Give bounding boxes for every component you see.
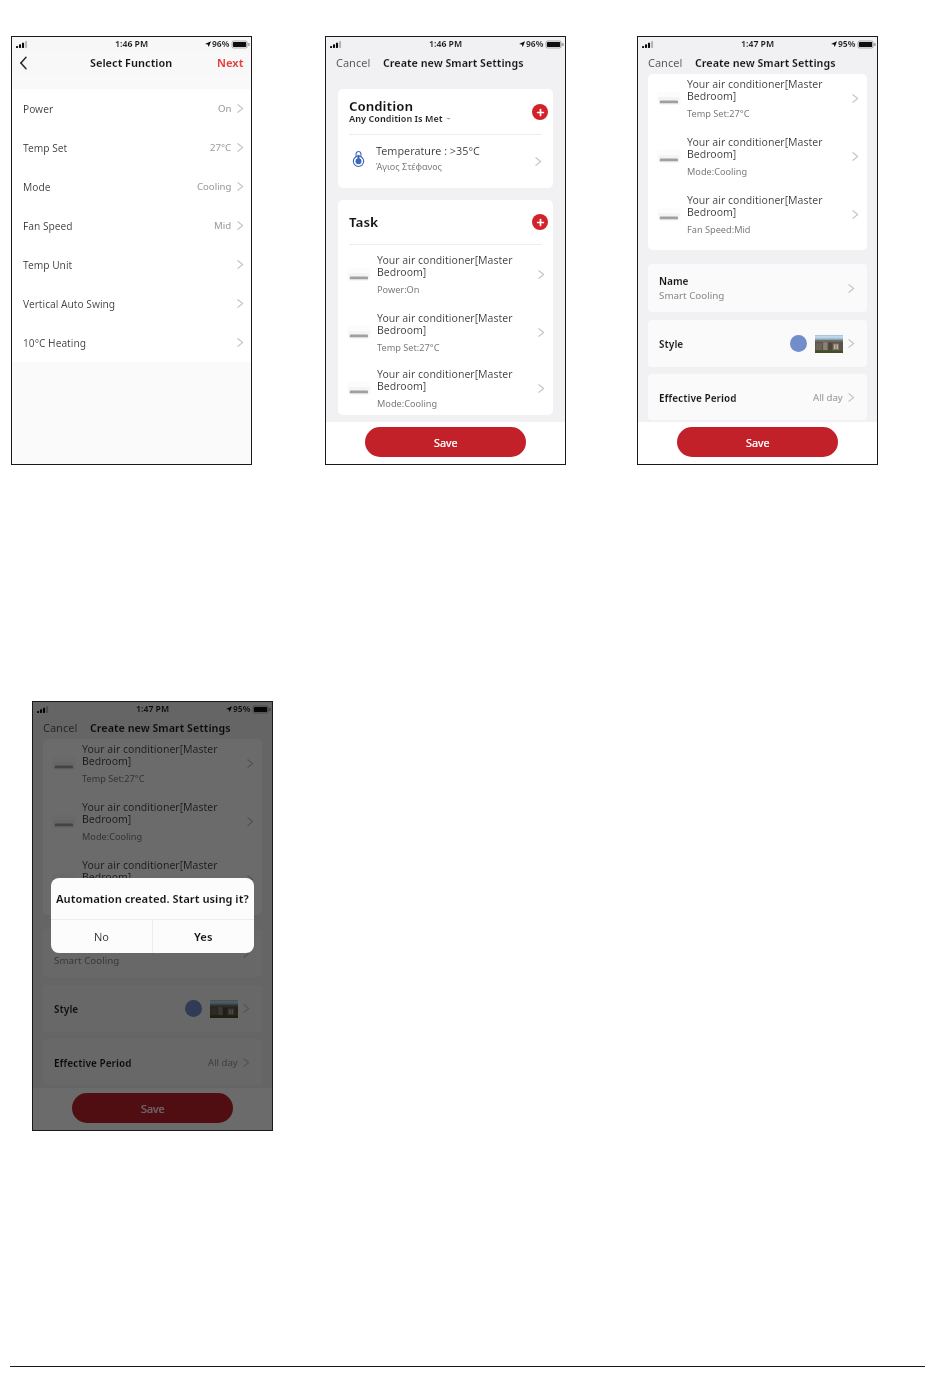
staticText: Mode:Cooling bbox=[687, 165, 748, 178]
button[interactable]: Add bbox=[532, 104, 548, 120]
button[interactable]: Your air conditioner[Master Bedroom] bbox=[338, 361, 553, 415]
button[interactable]: Mode bbox=[12, 167, 251, 206]
staticText: 1:46 PM bbox=[429, 38, 463, 50]
staticText: Automation created. Start using it? bbox=[56, 891, 249, 906]
staticText: Yes bbox=[194, 929, 213, 944]
button[interactable]: Your air conditioner[Master Bedroom] bbox=[43, 739, 262, 792]
staticText: Άγιος Στέφανος bbox=[376, 160, 442, 172]
staticText: Your air conditioner[Master Bedroom] bbox=[687, 77, 823, 104]
button[interactable]: Your air conditioner[Master Bedroom] bbox=[338, 245, 553, 303]
staticText: Your air conditioner[Master Bedroom] bbox=[377, 367, 513, 394]
staticText: Cooling bbox=[197, 180, 232, 193]
button[interactable]: Save bbox=[365, 427, 526, 457]
staticText: 96% bbox=[526, 38, 544, 50]
button[interactable]: Your air conditioner[Master Bedroom] bbox=[43, 850, 262, 908]
staticText: 27°C bbox=[210, 141, 232, 154]
button[interactable]: Your air conditioner[Master Bedroom] bbox=[648, 185, 867, 243]
staticText: Style bbox=[54, 1002, 185, 1015]
staticText: Your air conditioner[Master Bedroom] bbox=[82, 742, 218, 769]
staticText: Save bbox=[141, 1101, 165, 1116]
staticText: Effective Period bbox=[659, 391, 813, 404]
staticText: Your air conditioner[Master Bedroom] bbox=[377, 253, 513, 280]
button[interactable]: Next bbox=[217, 55, 244, 70]
staticText: Cancel bbox=[336, 55, 371, 70]
staticText: Your air conditioner[Master Bedroom] bbox=[82, 800, 218, 827]
staticText: No bbox=[94, 929, 110, 944]
staticText: Save bbox=[746, 435, 770, 450]
staticText: Name bbox=[54, 939, 84, 952]
staticText: Power:On bbox=[377, 283, 420, 296]
button[interactable]: Cancel bbox=[336, 55, 371, 70]
staticText: Fan Speed bbox=[23, 219, 73, 233]
button[interactable]: Vertical Auto Swing bbox=[12, 284, 251, 323]
button[interactable]: 10°C Heating bbox=[12, 323, 251, 362]
staticText: Select Function bbox=[90, 55, 173, 70]
button[interactable]: Yes bbox=[153, 920, 254, 953]
button[interactable]: Temperature : >35°C bbox=[338, 135, 553, 188]
staticText: 1:46 PM bbox=[115, 38, 149, 50]
staticText: 1:47 PM bbox=[741, 38, 775, 50]
staticText: Smart Cooling bbox=[54, 954, 120, 967]
staticText: Your air conditioner[Master Bedroom] bbox=[82, 858, 218, 885]
staticText: Cancel bbox=[43, 720, 78, 735]
staticText: Create new Smart Settings bbox=[383, 56, 524, 70]
button[interactable]: Save bbox=[72, 1093, 233, 1123]
staticText: 95% bbox=[233, 703, 251, 715]
staticText: Name bbox=[659, 274, 689, 287]
staticText: Temp Set bbox=[23, 141, 68, 155]
staticText: Mid bbox=[214, 219, 232, 232]
staticText: Create new Smart Settings bbox=[695, 56, 836, 70]
staticText: Power bbox=[23, 102, 54, 116]
staticText: Mode:Cooling bbox=[82, 830, 143, 843]
button[interactable]: Name bbox=[648, 264, 867, 312]
button[interactable]: Your air conditioner[Master Bedroom] bbox=[648, 127, 867, 185]
staticText: All day bbox=[813, 391, 843, 404]
staticText: Temp Unit bbox=[23, 258, 73, 272]
staticText: Cancel bbox=[648, 55, 683, 70]
button[interactable]: Power bbox=[12, 89, 251, 128]
button[interactable]: Cancel bbox=[43, 720, 78, 735]
button[interactable]: Effective Period bbox=[43, 1039, 262, 1085]
staticText: Temp Set:27°C bbox=[687, 107, 750, 120]
staticText: 95% bbox=[838, 38, 856, 50]
staticText: Next bbox=[217, 55, 244, 70]
staticText: Style bbox=[659, 337, 790, 350]
staticText: 10°C Heating bbox=[23, 336, 86, 350]
button[interactable]: Cancel bbox=[648, 55, 683, 70]
button[interactable]: Back bbox=[20, 54, 38, 72]
staticText: Temp Set:27°C bbox=[377, 341, 440, 354]
staticText: Temperature : >35°C bbox=[376, 143, 480, 158]
staticText: All day bbox=[208, 1056, 238, 1069]
button[interactable]: Name bbox=[43, 929, 262, 977]
staticText: Your air conditioner[Master Bedroom] bbox=[687, 135, 823, 162]
staticText: Condition bbox=[349, 97, 414, 115]
button[interactable]: Style bbox=[648, 320, 867, 367]
staticText: Any Condition Is Met bbox=[349, 112, 443, 124]
staticText: Your air conditioner[Master Bedroom] bbox=[687, 193, 823, 220]
button[interactable]: Add bbox=[532, 214, 548, 230]
staticText: Vertical Auto Swing bbox=[23, 297, 116, 311]
button[interactable]: Your air conditioner[Master Bedroom] bbox=[338, 303, 553, 361]
staticText: Smart Cooling bbox=[659, 289, 725, 302]
button[interactable]: Temp Set bbox=[12, 128, 251, 167]
staticText: Fan Speed:Mid bbox=[82, 888, 146, 901]
button[interactable]: Save bbox=[677, 427, 838, 457]
staticText: Save bbox=[434, 435, 458, 450]
staticText: Fan Speed:Mid bbox=[687, 223, 751, 236]
staticText: Mode:Cooling bbox=[377, 397, 438, 410]
button[interactable]: Your air conditioner[Master Bedroom] bbox=[648, 74, 867, 127]
staticText: Mode bbox=[23, 180, 51, 194]
button[interactable]: No bbox=[51, 920, 152, 953]
button[interactable]: Your air conditioner[Master Bedroom] bbox=[43, 792, 262, 850]
staticText: Your air conditioner[Master Bedroom] bbox=[377, 311, 513, 338]
button[interactable]: Style bbox=[43, 985, 262, 1032]
button[interactable]: Fan Speed bbox=[12, 206, 251, 245]
staticText: Task bbox=[349, 213, 532, 231]
staticText: 1:47 PM bbox=[136, 703, 170, 715]
staticText: Effective Period bbox=[54, 1056, 208, 1069]
button[interactable]: Temp Unit bbox=[12, 245, 251, 284]
staticText: Create new Smart Settings bbox=[90, 721, 231, 735]
staticText: On bbox=[218, 102, 232, 115]
button[interactable]: Effective Period bbox=[648, 374, 867, 420]
staticText: Temp Set:27°C bbox=[82, 772, 145, 785]
